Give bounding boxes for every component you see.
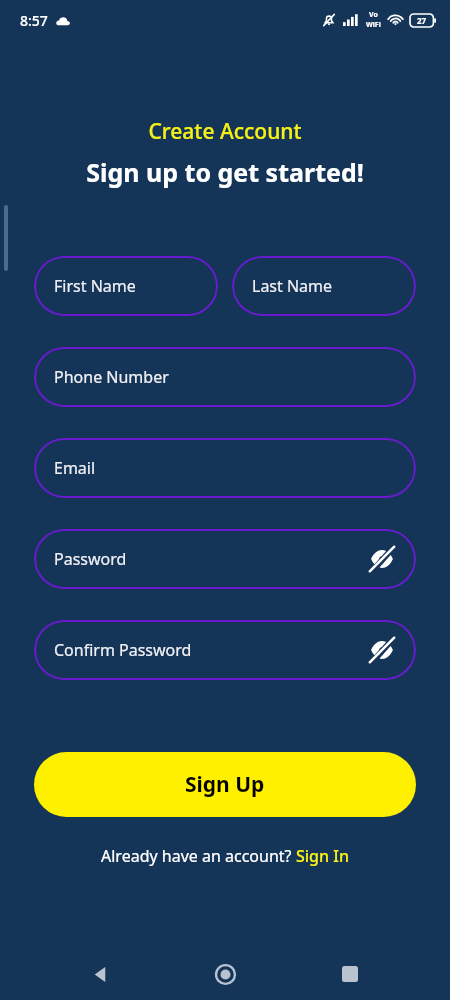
staticText: Sign up to get started! — [86, 155, 364, 189]
staticText: Vo — [369, 10, 378, 20]
staticText: 27 — [417, 15, 427, 26]
button[interactable]: Sign In — [296, 845, 349, 867]
button[interactable]: Sign Up — [34, 752, 416, 817]
staticText: First Name — [54, 275, 136, 297]
staticText: Create Account — [148, 117, 302, 146]
staticText: Sign In — [296, 845, 349, 867]
staticText: WiFi — [366, 20, 381, 30]
button[interactable]: Back — [77, 950, 125, 998]
button[interactable]: First Name — [34, 256, 218, 316]
staticText: Last Name — [252, 275, 333, 297]
button[interactable]: Phone Number — [34, 347, 416, 407]
staticText: Password — [54, 548, 127, 570]
staticText: 8:57 — [20, 11, 48, 30]
button[interactable]: Password — [34, 529, 416, 589]
staticText: Confirm Password — [54, 639, 192, 661]
button[interactable]: Confirm Password — [34, 620, 416, 680]
button[interactable]: Home — [201, 950, 249, 998]
staticText: Email — [54, 457, 96, 479]
staticText: Phone Number — [54, 366, 169, 388]
button[interactable]: Toggle password visibility — [364, 632, 400, 668]
button[interactable]: Email — [34, 438, 416, 498]
button[interactable]: Toggle password visibility — [364, 541, 400, 577]
button[interactable]: Last Name — [232, 256, 416, 316]
staticText: Already have an account? — [101, 845, 296, 867]
button[interactable]: Recent apps — [326, 950, 374, 998]
staticText: Sign Up — [185, 770, 265, 799]
